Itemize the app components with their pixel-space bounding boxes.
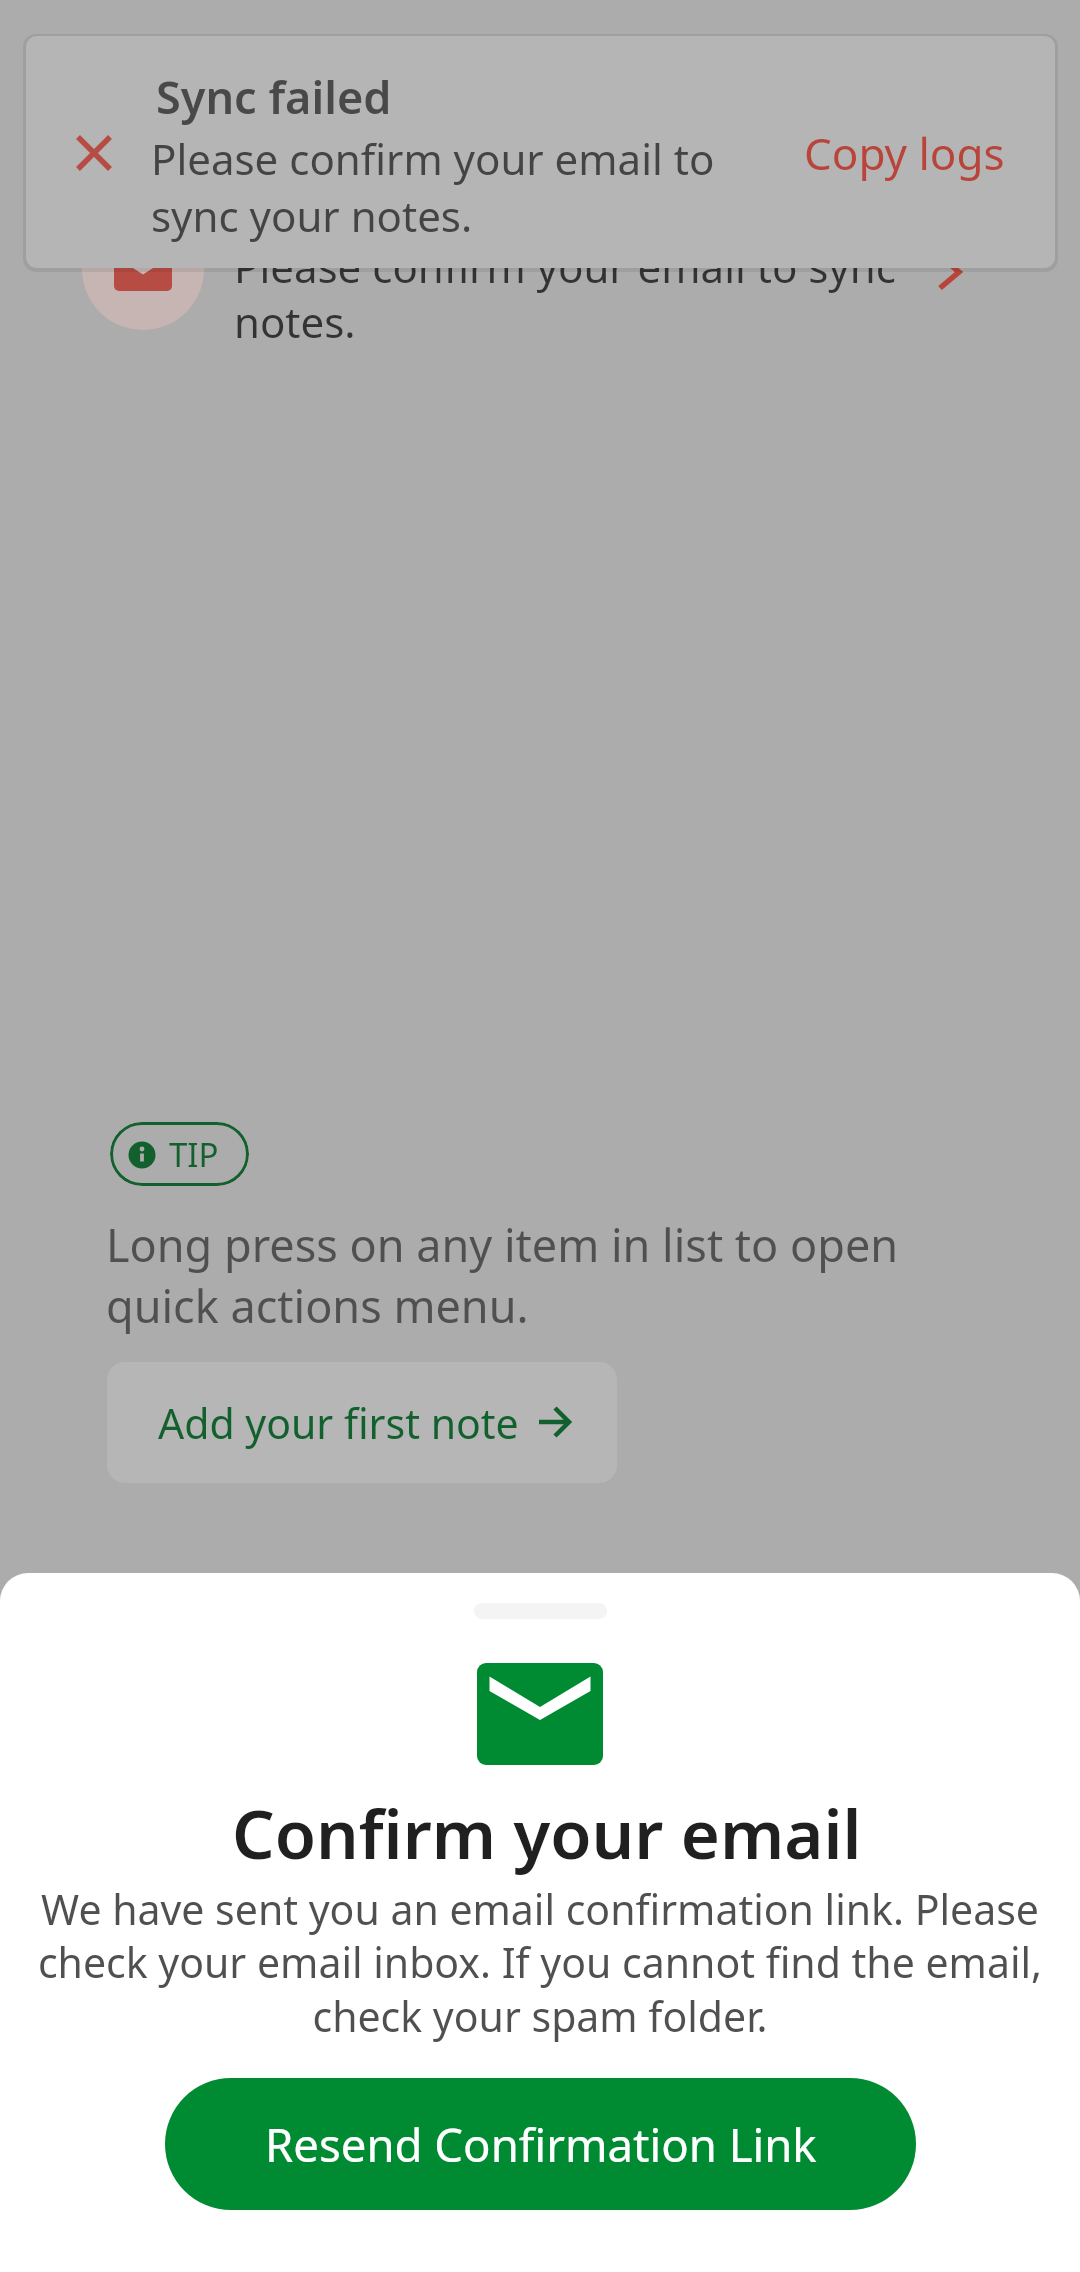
button[interactable]: Open bbox=[936, 250, 966, 296]
button[interactable]: Error bbox=[26, 36, 1055, 268]
staticText: Please confirm your email to sync your n… bbox=[151, 130, 715, 244]
staticText: Long press on any item in list to open q… bbox=[106, 1214, 899, 1336]
button[interactable]: TIP bbox=[110, 1122, 249, 1186]
other: Error bbox=[76, 135, 112, 171]
staticText: We have sent you an email confirmation l… bbox=[30, 1881, 1050, 2044]
staticText: Please confirm your email to sync notes. bbox=[234, 238, 896, 350]
staticText: Sync failed bbox=[156, 66, 392, 127]
button[interactable]: Copy logs bbox=[804, 123, 1005, 183]
button[interactable]: Resend Confirmation Link bbox=[165, 2078, 916, 2210]
staticText: TIP bbox=[169, 1132, 219, 1177]
staticText: Add your first note bbox=[158, 1395, 519, 1451]
staticText: Copy logs bbox=[804, 123, 1005, 183]
staticText: Resend Confirmation Link bbox=[265, 2113, 817, 2175]
staticText: Confirm your email bbox=[232, 1787, 862, 1878]
button[interactable]: Add your first note bbox=[107, 1362, 617, 1483]
button[interactable] bbox=[0, 190, 1080, 350]
